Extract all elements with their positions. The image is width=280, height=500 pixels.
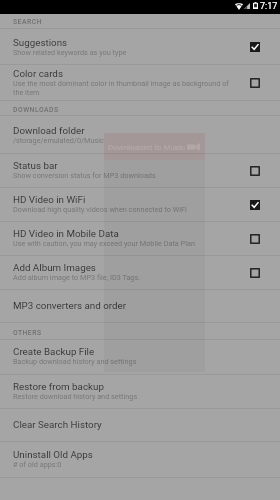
button[interactable]: Add Album Images xyxy=(0,256,280,289)
staticText: Suggestions xyxy=(13,37,68,48)
staticText: /storage/emulated/0/Music xyxy=(13,136,104,145)
staticText: Use with caution, you may exceed your Mo… xyxy=(13,239,195,248)
button[interactable]: MP3 converters and order xyxy=(0,290,280,322)
staticText: Download high quality videos when connec… xyxy=(13,205,187,214)
button[interactable]: Clear Search History xyxy=(0,409,280,441)
button[interactable]: Download folder xyxy=(0,116,280,153)
staticText: DOWNLOADS xyxy=(13,106,59,114)
staticText: Add album image to MP3 file, ID3 Tags. xyxy=(13,273,141,282)
button[interactable]: Uninstall Old Apps xyxy=(0,442,280,477)
staticText: Restore from backup xyxy=(13,381,104,392)
staticText: Restore download history and settings xyxy=(13,392,138,401)
staticText: Show conversion status for MP3 downloads xyxy=(13,171,156,180)
staticText: HD Video in WiFi xyxy=(13,194,86,205)
button[interactable]: HD Video in WiFi xyxy=(0,188,280,221)
staticText: Backup download history and settings xyxy=(13,357,137,366)
staticText: HD Video in Mobile Data xyxy=(13,228,119,239)
button[interactable]: HD Video in Mobile Data xyxy=(0,222,280,255)
staticText: 7:17 xyxy=(260,1,278,12)
button[interactable]: Status bar xyxy=(0,154,280,187)
staticText: Uninstall Old Apps xyxy=(13,449,93,460)
staticText: # of old apps:0 xyxy=(13,460,62,469)
staticText: Download folder xyxy=(13,125,85,136)
staticText: Show related keywords as you type xyxy=(13,48,127,57)
staticText: MP3 converters and order xyxy=(13,300,126,311)
staticText: Create Backup File xyxy=(13,346,95,357)
staticText: Add Album Images xyxy=(13,262,96,273)
button[interactable]: Create Backup File xyxy=(0,340,280,374)
button[interactable]: Restore from backup xyxy=(0,375,280,408)
staticText: Downloaded to Music xyxy=(108,143,186,152)
staticText: Color cards xyxy=(13,68,63,79)
staticText: Clear Search History xyxy=(13,419,102,430)
staticText: Status bar xyxy=(13,160,58,171)
staticText: Use the most dominant color in thumbnail… xyxy=(13,79,233,97)
button[interactable]: Color cards xyxy=(0,65,280,100)
button[interactable]: Suggestions xyxy=(0,29,280,64)
staticText: OTHERS xyxy=(13,329,42,337)
staticText: SEARCH xyxy=(13,18,42,26)
